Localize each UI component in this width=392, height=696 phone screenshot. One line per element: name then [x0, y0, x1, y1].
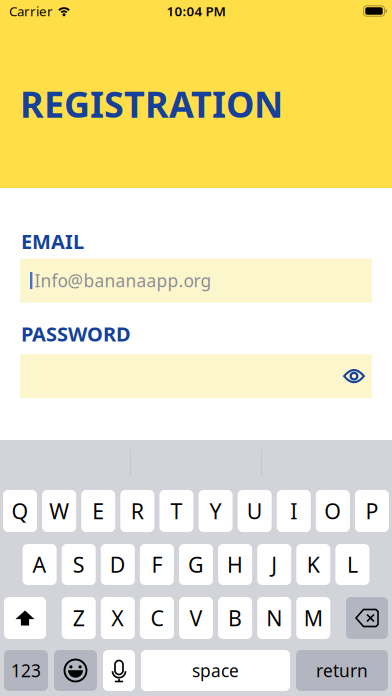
- button[interactable]: Password: [20, 354, 372, 398]
- button[interactable]: I: [277, 490, 311, 532]
- button[interactable]: Y: [199, 490, 233, 532]
- staticText: A: [33, 550, 47, 579]
- staticText: EMAIL: [21, 228, 84, 255]
- button[interactable]: E: [81, 490, 115, 532]
- staticText: X: [111, 604, 124, 632]
- button[interactable]: A: [23, 544, 57, 585]
- staticText: return: [316, 659, 368, 682]
- staticText: Z: [73, 604, 85, 632]
- button[interactable]: N: [257, 597, 291, 639]
- button[interactable]: L: [335, 544, 369, 585]
- staticText: 10:04 PM: [166, 2, 225, 20]
- staticText: L: [347, 550, 358, 579]
- button[interactable]: M: [296, 597, 330, 639]
- staticText: C: [150, 604, 163, 632]
- button[interactable]: B: [218, 597, 252, 639]
- staticText: R: [131, 497, 144, 525]
- staticText: space: [192, 659, 239, 682]
- staticText: Info@bananaapp.org: [34, 269, 211, 292]
- staticText: B: [228, 604, 242, 632]
- button[interactable]: Delete: [346, 597, 388, 639]
- staticText: W: [49, 497, 69, 525]
- button[interactable]: S: [62, 544, 96, 585]
- staticText: U: [247, 497, 263, 525]
- staticText: REGISTRATION: [20, 80, 283, 128]
- staticText: F: [151, 550, 162, 579]
- button[interactable]: O: [316, 490, 350, 532]
- button[interactable]: 123: [4, 650, 48, 691]
- staticText: I: [290, 497, 297, 525]
- button[interactable]: Shift: [4, 597, 46, 639]
- staticText: Q: [12, 497, 29, 525]
- staticText: P: [365, 497, 378, 525]
- button[interactable]: Emoji: [54, 650, 97, 691]
- button[interactable]: J: [257, 544, 291, 585]
- staticText: G: [188, 550, 204, 579]
- staticText: T: [170, 497, 182, 525]
- staticText: O: [324, 497, 341, 525]
- staticText: N: [266, 604, 282, 632]
- button[interactable]: D: [101, 544, 135, 585]
- staticText: J: [271, 550, 277, 579]
- button[interactable]: return: [296, 650, 388, 691]
- button[interactable]: H: [218, 544, 252, 585]
- button[interactable]: X: [101, 597, 135, 639]
- staticText: Y: [210, 497, 222, 525]
- staticText: 123: [11, 659, 41, 682]
- staticText: PASSWORD: [21, 321, 131, 347]
- button[interactable]: C: [140, 597, 174, 639]
- staticText: H: [227, 550, 243, 579]
- button[interactable]: R: [120, 490, 154, 532]
- staticText: K: [307, 550, 320, 579]
- button[interactable]: F: [140, 544, 174, 585]
- button[interactable]: T: [159, 490, 193, 532]
- staticText: E: [92, 497, 104, 525]
- button[interactable]: W: [42, 490, 76, 532]
- button[interactable]: space: [141, 650, 290, 691]
- button[interactable]: Q: [3, 490, 37, 532]
- button[interactable]: G: [179, 544, 213, 585]
- staticText: S: [73, 550, 85, 579]
- button[interactable]: K: [296, 544, 330, 585]
- button[interactable]: Dictation: [103, 650, 135, 691]
- button[interactable]: Show password: [339, 361, 369, 391]
- button[interactable]: V: [179, 597, 213, 639]
- staticText: V: [189, 604, 202, 632]
- button[interactable]: Info@bananaapp.org: [20, 259, 372, 303]
- button[interactable]: Z: [62, 597, 96, 639]
- staticText: M: [304, 604, 323, 632]
- button[interactable]: U: [238, 490, 272, 532]
- staticText: D: [110, 550, 126, 579]
- staticText: Carrier: [9, 2, 53, 20]
- button[interactable]: P: [355, 490, 389, 532]
